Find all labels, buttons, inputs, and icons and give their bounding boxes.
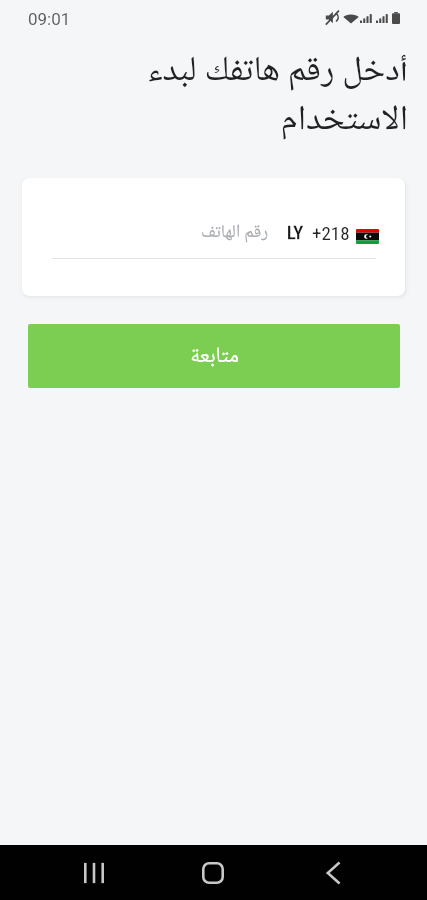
button[interactable]: Recent apps xyxy=(62,845,125,900)
staticText: LY xyxy=(287,222,303,243)
staticText: رقم الهاتف xyxy=(201,220,269,245)
button[interactable]: Home xyxy=(181,845,244,900)
button[interactable]: رقم الهاتف xyxy=(22,178,405,296)
staticText: +218 xyxy=(312,222,350,244)
staticText: أدخل رقم هاتفك لبدء الاستخدام xyxy=(20,48,408,144)
button[interactable]: متابعة xyxy=(28,324,400,388)
staticText: متابعة xyxy=(190,341,239,371)
button[interactable]: Back xyxy=(301,845,364,900)
staticText: 09:01 xyxy=(28,9,71,29)
